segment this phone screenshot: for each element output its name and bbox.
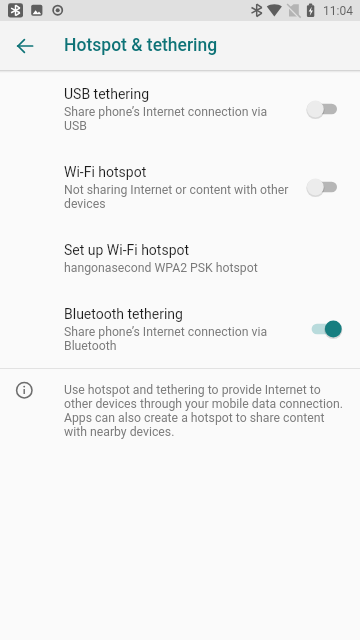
staticText: Bluetooth tethering	[64, 306, 183, 322]
staticText: Use hotspot and tethering to provide Int…	[64, 383, 343, 439]
staticText: Set up Wi-Fi hotspot	[64, 242, 190, 258]
button[interactable]: Navigate up	[10, 31, 40, 61]
staticText: Wi-Fi hotspot	[64, 164, 147, 180]
button[interactable]: USB tethering	[0, 70, 360, 148]
button[interactable]: Bluetooth tethering	[0, 290, 360, 368]
button[interactable]: Set up Wi-Fi hotspot	[0, 226, 360, 290]
staticText: USB tethering	[64, 86, 150, 102]
staticText: 11:04	[323, 4, 353, 18]
button[interactable]: Wi-Fi hotspot	[0, 148, 360, 226]
button[interactable]: On	[307, 317, 343, 341]
staticText: Not sharing Internet or content with oth…	[64, 183, 289, 211]
button[interactable]: Off	[307, 175, 343, 199]
staticText: Hotspot & tethering	[64, 35, 218, 56]
staticText: Share phone’s Internet connection via Bl…	[64, 325, 268, 353]
staticText: hangonasecond WPA2 PSK hotspot	[64, 261, 258, 275]
button[interactable]: Off	[307, 97, 343, 121]
staticText: Share phone’s Internet connection via US…	[64, 105, 268, 133]
